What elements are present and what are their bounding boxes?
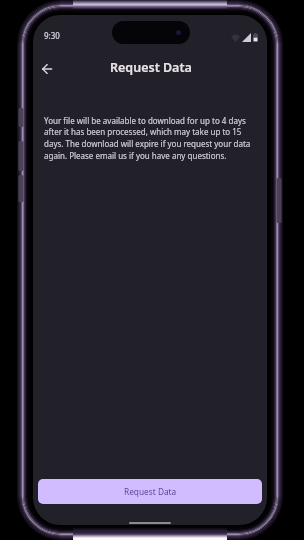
staticText: Request Data bbox=[124, 486, 177, 497]
button[interactable]: Request Data bbox=[38, 479, 262, 504]
staticText: Request Data bbox=[110, 59, 192, 76]
staticText: Your file will be available to download … bbox=[44, 115, 254, 162]
staticText: 9:30 bbox=[44, 30, 60, 41]
button[interactable]: Back bbox=[35, 57, 59, 81]
